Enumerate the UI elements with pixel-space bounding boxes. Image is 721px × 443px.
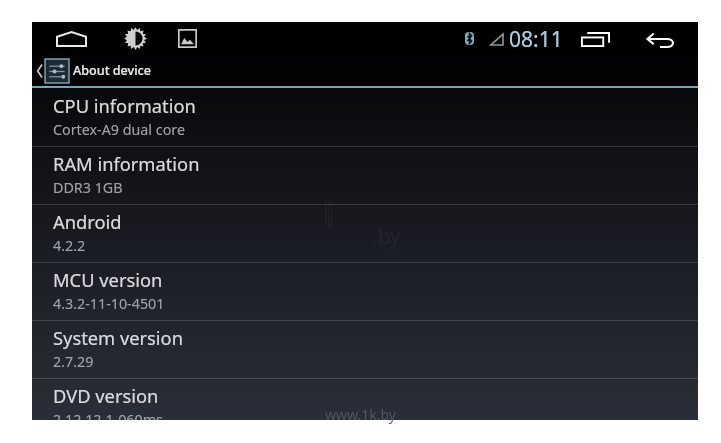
button[interactable]: Home — [50, 22, 92, 55]
staticText: MCU version — [53, 267, 163, 292]
staticText: 4.3.2-11-10-4501 — [53, 294, 165, 313]
staticText: System version — [53, 325, 183, 350]
button[interactable]: Brightness — [120, 22, 150, 55]
staticText: DVD version — [53, 383, 159, 408]
staticText: Android — [53, 209, 122, 234]
staticText: RAM information — [53, 151, 200, 176]
button[interactable]: Back — [640, 24, 682, 57]
button[interactable]: Wallpaper — [172, 22, 202, 55]
button[interactable]: Recent apps — [574, 23, 616, 56]
button[interactable]: CPU information — [32, 88, 698, 146]
staticText: Cortex-A9 dual core — [53, 120, 185, 139]
staticText: www.1k.by — [325, 405, 396, 424]
button[interactable]: RAM information — [32, 146, 698, 204]
button[interactable]: About device — [32, 55, 698, 86]
staticText: DDR3 1GB — [53, 178, 123, 197]
staticText: 08:11 — [509, 25, 563, 54]
staticText: CPU information — [53, 93, 196, 118]
button[interactable]: Android — [32, 204, 698, 262]
staticText: 2.12.12.1-060ms — [53, 410, 163, 420]
button[interactable]: MCU version — [32, 262, 698, 320]
staticText: 4.2.2 — [53, 236, 86, 255]
button[interactable]: DVD version — [32, 378, 698, 420]
staticText: 2.7.29 — [53, 352, 94, 371]
button[interactable]: System version — [32, 320, 698, 378]
staticText: About device — [73, 62, 151, 79]
